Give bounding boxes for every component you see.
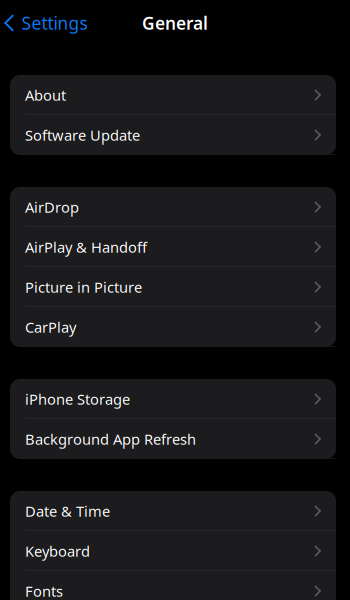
staticText: CarPlay xyxy=(25,317,76,337)
staticText: Date & Time xyxy=(25,501,110,521)
button[interactable]: Fonts xyxy=(10,571,336,600)
button[interactable]: Keyboard xyxy=(10,531,336,571)
staticText: AirDrop xyxy=(25,197,79,217)
staticText: About xyxy=(25,85,66,105)
button[interactable]: CarPlay xyxy=(10,307,336,347)
button[interactable]: AirPlay & Handoff xyxy=(10,227,336,267)
staticText: Background App Refresh xyxy=(25,429,196,449)
staticText: Picture in Picture xyxy=(25,277,142,297)
button[interactable]: Settings xyxy=(0,4,87,41)
button[interactable]: Date & Time xyxy=(10,491,336,531)
button[interactable]: Picture in Picture xyxy=(10,267,336,307)
staticText: Fonts xyxy=(25,581,63,600)
staticText: Keyboard xyxy=(25,541,90,561)
button[interactable]: AirDrop xyxy=(10,187,336,227)
staticText: iPhone Storage xyxy=(25,389,130,409)
staticText: General xyxy=(142,11,208,34)
staticText: Software Update xyxy=(25,125,140,145)
staticText: AirPlay & Handoff xyxy=(25,237,147,257)
button[interactable]: Background App Refresh xyxy=(10,419,336,459)
staticText: Settings xyxy=(21,11,87,34)
button[interactable]: iPhone Storage xyxy=(10,379,336,419)
button[interactable]: Software Update xyxy=(10,115,336,155)
button[interactable]: About xyxy=(10,75,336,115)
